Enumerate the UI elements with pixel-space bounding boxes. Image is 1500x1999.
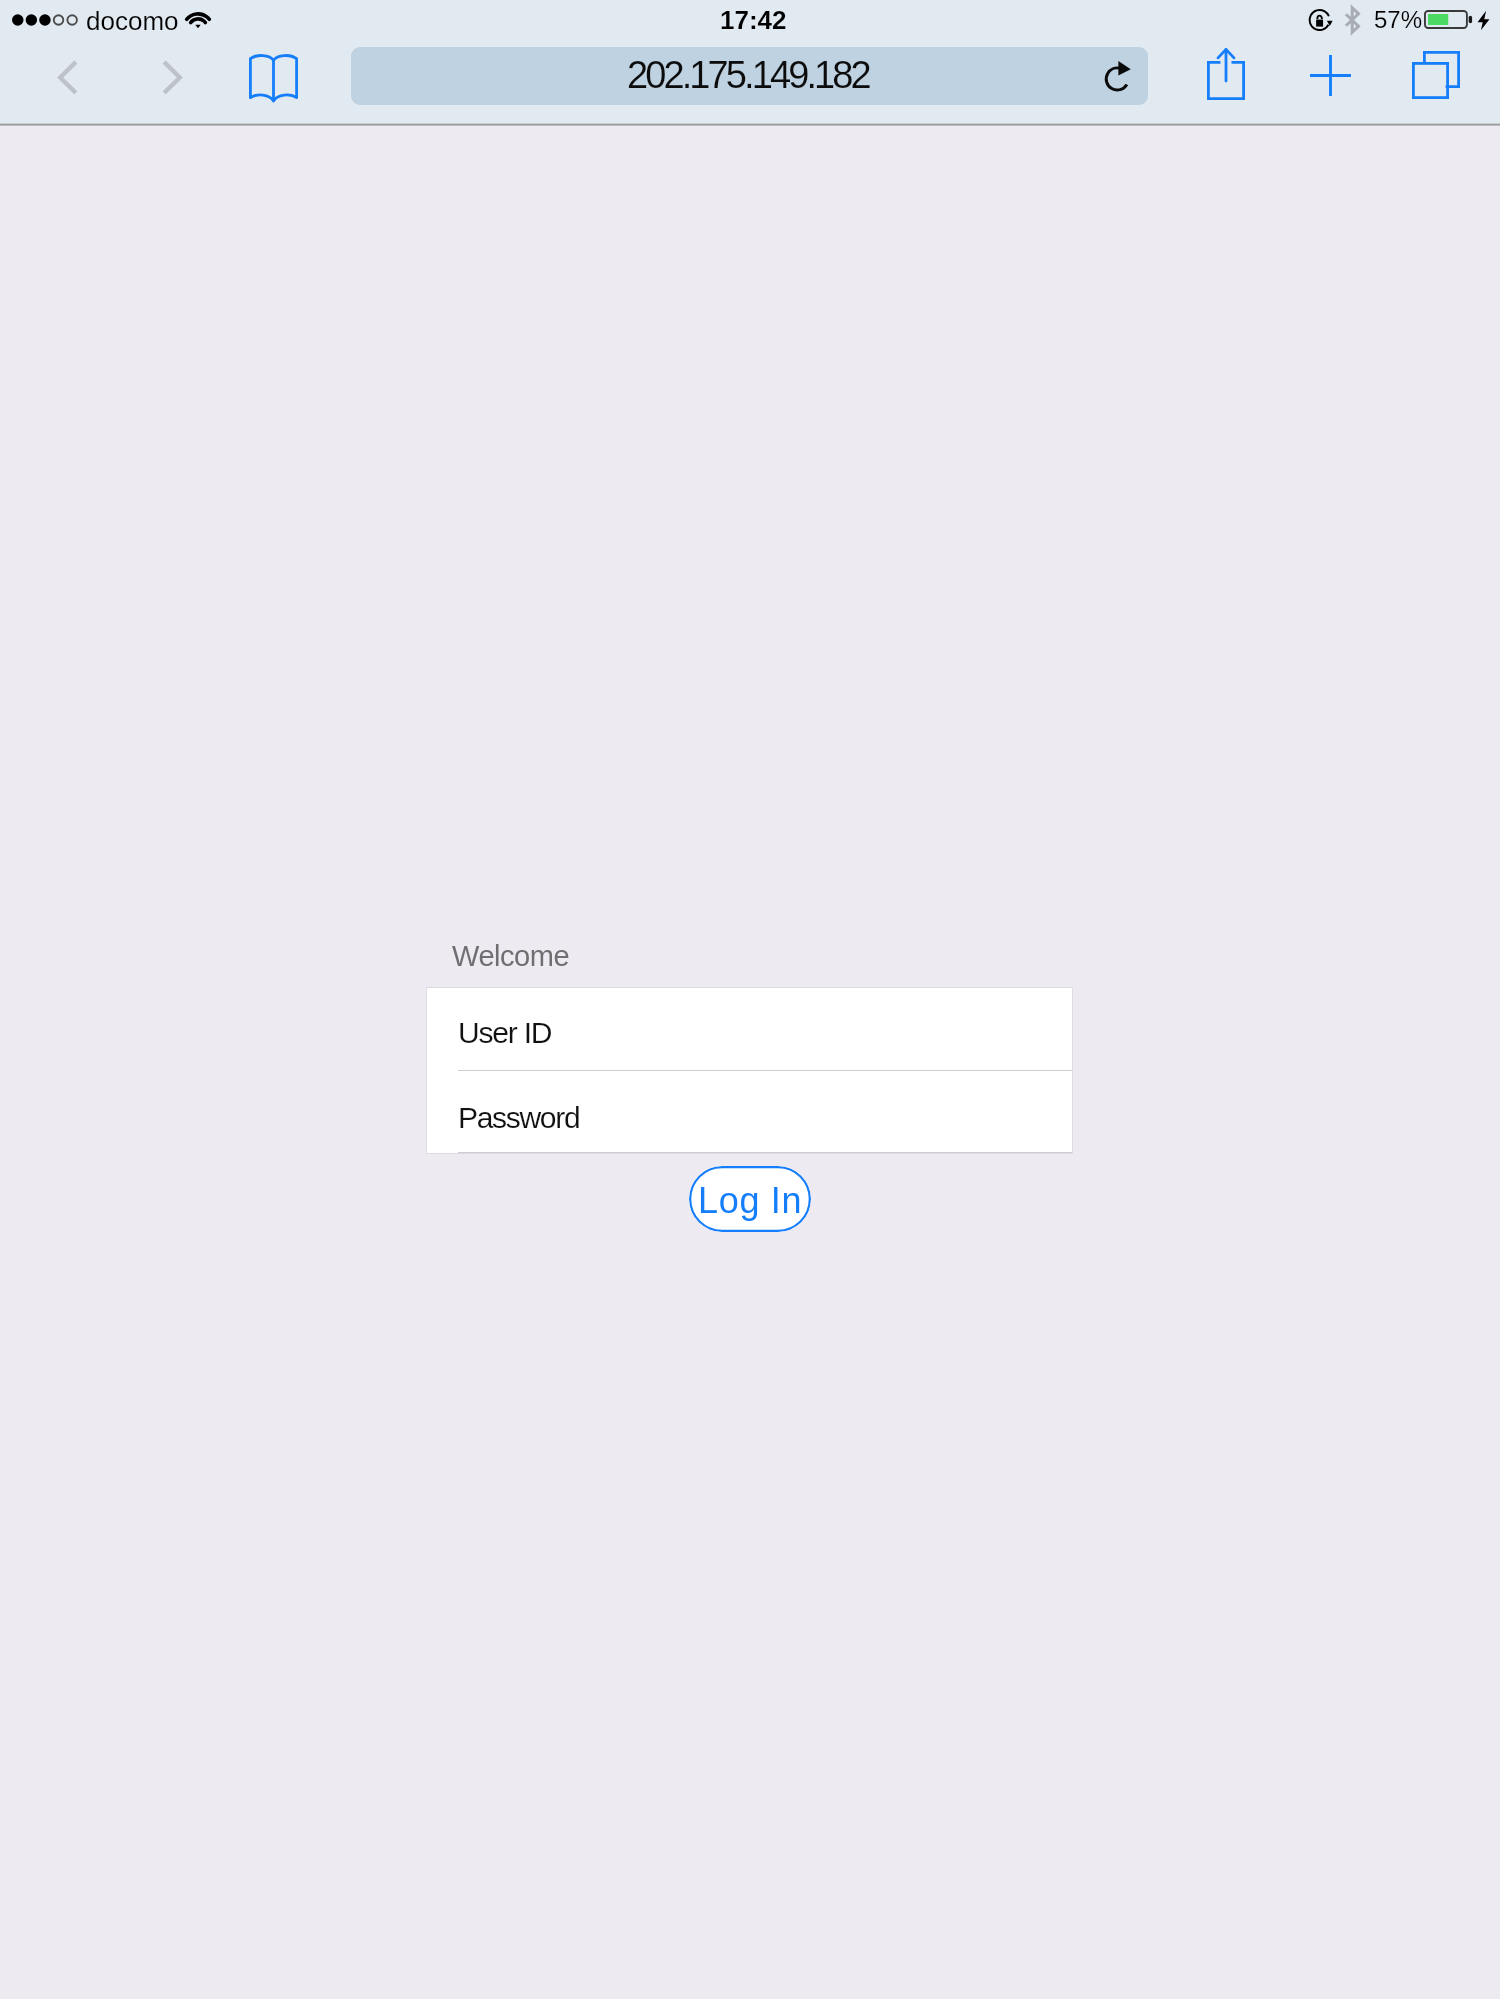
staticText: Password (458, 1101, 580, 1135)
button[interactable]: Password (427, 1072, 1072, 1153)
button[interactable]: Share (1191, 32, 1261, 116)
button[interactable]: New tab (1294, 39, 1367, 112)
button[interactable]: Tabs (1396, 35, 1476, 115)
staticText: Welcome (452, 940, 570, 972)
button[interactable]: User ID (427, 988, 1072, 1070)
staticText: User ID (458, 1016, 552, 1050)
button[interactable]: Bookmarks (233, 38, 314, 117)
button[interactable]: Forward (146, 44, 198, 111)
staticText: 17:42 (720, 5, 787, 34)
staticText: 57% (1374, 6, 1423, 33)
button[interactable]: 202.175.149.182 (351, 47, 1148, 105)
button[interactable]: Log In (689, 1166, 811, 1232)
staticText: 202.175.149.182 (627, 54, 869, 96)
button[interactable]: Back (42, 44, 94, 111)
staticText: docomo (86, 6, 179, 35)
button[interactable]: Reload (1089, 42, 1148, 107)
staticText: Log In (698, 1180, 803, 1220)
